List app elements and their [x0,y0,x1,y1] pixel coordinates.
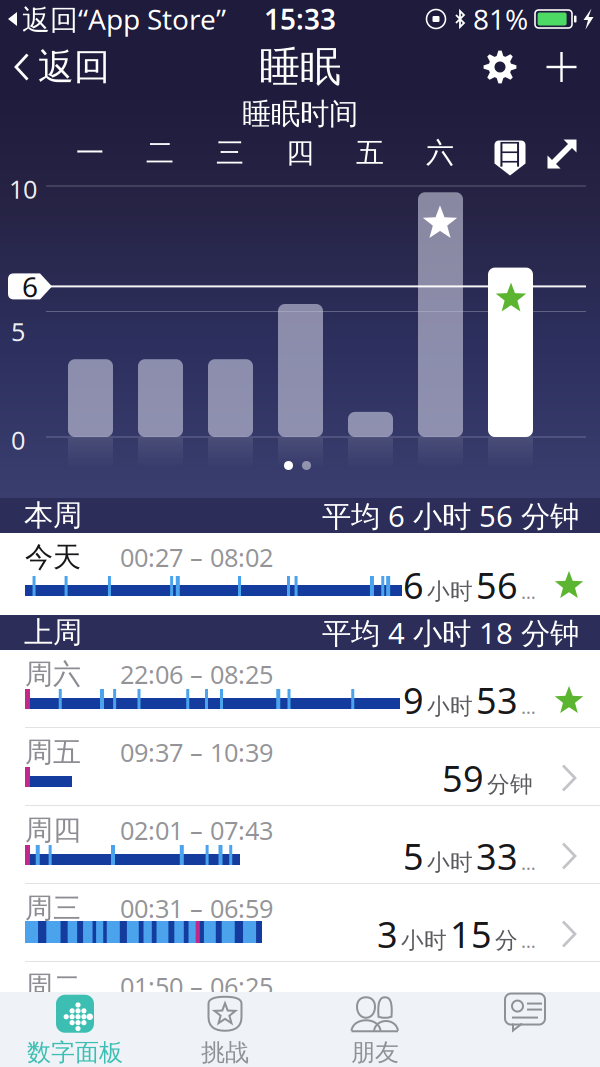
staticText: 02:01 – 07:43 [120,813,273,847]
button[interactable]: 六 [410,132,470,174]
button[interactable]: 周三 [0,884,600,962]
staticText: 15 [450,910,492,958]
button[interactable]: 周五 [0,728,600,806]
staticText: 00:27 – 08:02 [120,540,273,574]
staticText: 33 [476,832,518,880]
staticText: 二 [146,136,174,170]
staticText: 01:50 – 06:25 [120,969,273,1003]
button[interactable]: 日 [480,132,540,174]
button[interactable]: 四 [270,132,330,174]
staticText: 周五 [25,735,81,769]
staticText: 6 [22,268,38,305]
staticText: 0 [11,423,25,457]
button[interactable]: 动态 [450,992,600,1067]
staticText: 分 [495,926,518,954]
staticText: 日 [496,137,524,171]
staticText: … [521,850,536,875]
staticText: 周三 [25,891,81,925]
staticText: 三 [216,136,244,170]
staticText: 周二 [25,969,81,1003]
staticText: 15:33 [264,0,336,38]
staticText: 数字面板 [27,1038,123,1067]
staticText: 小时 [401,926,447,954]
staticText: 5 [11,314,25,348]
button[interactable]: 今天 [0,533,600,615]
staticText: 上周 [24,614,82,650]
staticText: 六 [426,136,454,170]
staticText: 一 [76,136,104,170]
staticText: 小时 [427,848,473,876]
button[interactable]: 二 [130,132,190,174]
staticText: 56 [476,561,518,609]
staticText: 00:31 – 06:59 [120,891,273,925]
staticText: 五 [356,136,384,170]
staticText: 本周 [24,497,82,533]
staticText: 53 [476,676,518,724]
staticText: … [521,928,536,953]
staticText: 分钟 [487,770,533,798]
button[interactable]: 朋友 [300,992,450,1067]
button[interactable]: 设置 [469,40,531,94]
staticText: 22:06 – 08:25 [120,657,273,691]
staticText: 四 [286,136,314,170]
button[interactable]: 周四 [0,806,600,884]
button[interactable]: 挑战 [150,992,300,1067]
staticText: 小时 [427,692,473,720]
staticText: 81% [473,0,528,38]
staticText: 小时 [427,577,473,605]
button[interactable]: 五 [340,132,400,174]
staticText: … [521,579,536,604]
button[interactable]: 返回 [0,35,110,99]
staticText: 周六 [25,657,81,691]
button[interactable]: 周六 [0,650,600,728]
button[interactable]: 数字面板 [0,992,150,1067]
staticText: 3 [377,910,398,958]
staticText: … [521,694,536,719]
button[interactable]: 添加 [531,40,592,93]
staticText: 今天 [25,540,81,574]
staticText: 返回 [38,45,110,89]
button[interactable]: 三 [200,132,260,174]
button[interactable]: 全屏 [538,132,586,176]
staticText: 返回“App Store” [22,0,226,38]
staticText: 挑战 [201,1038,249,1067]
staticText: 6 [403,561,424,609]
staticText: 平均 6 小时 56 分钟 [322,496,579,535]
staticText: 朋友 [351,1038,399,1067]
staticText: 10 [9,172,37,206]
staticText: 周四 [25,813,81,847]
staticText: 睡眠时间 [242,96,358,132]
button[interactable]: 一 [60,132,120,174]
staticText: 59 [442,754,484,802]
staticText: 09:37 – 10:39 [120,735,273,769]
staticText: 5 [403,832,424,880]
staticText: 睡眠 [259,42,341,92]
staticText: 9 [403,676,424,724]
staticText: 平均 4 小时 18 分钟 [322,613,579,652]
